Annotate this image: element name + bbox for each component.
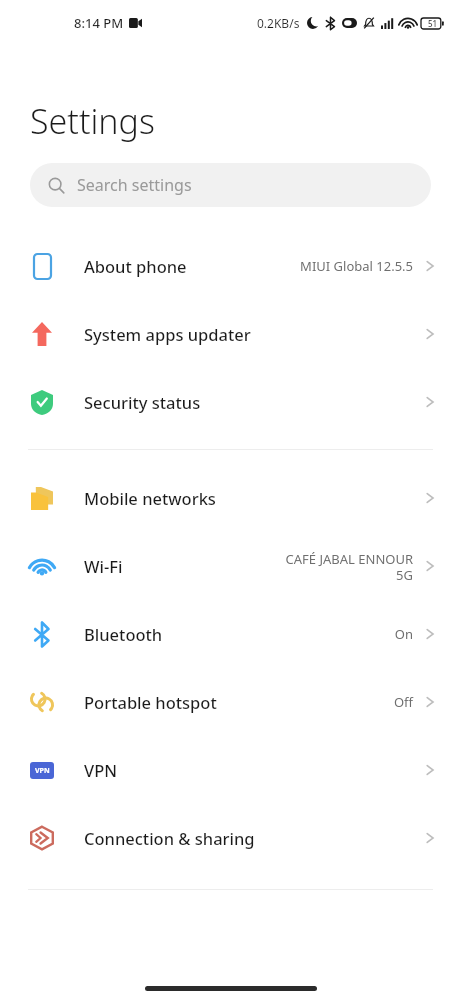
staticText: MIUI Global 12.5.5 [300,257,413,275]
staticText: Bluetooth [84,623,163,645]
button[interactable]: Bluetooth [0,600,461,668]
staticText: System apps updater [84,323,251,345]
staticText: VPN [35,766,50,776]
staticText: Settings [30,98,155,144]
button[interactable]: About phone [0,232,461,300]
button[interactable]: Security status [0,368,461,436]
staticText: 8:14 PM [74,14,124,32]
staticText: 51 [428,18,438,29]
staticText: Off [393,693,413,711]
button[interactable]: Search settings [30,163,431,207]
staticText: Security status [84,391,201,413]
staticText: 0.2KB/s [257,15,300,31]
staticText: CAFÉ JABAL ENNOUR 5G [285,550,413,583]
staticText: Mobile networks [84,487,216,509]
staticText: About phone [84,255,187,277]
button[interactable]: Wi-Fi [0,532,461,600]
button[interactable]: Connection & sharing [0,804,461,872]
staticText: VPN [84,759,118,781]
staticText: Search settings [77,174,192,196]
button[interactable]: Mobile networks [0,464,461,532]
staticText: Wi-Fi [84,555,123,577]
staticText: Portable hotspot [84,691,217,713]
button[interactable]: VPN [0,736,461,804]
staticText: Connection & sharing [84,827,255,849]
button[interactable]: System apps updater [0,300,461,368]
button[interactable]: Portable hotspot [0,668,461,736]
staticText: On [394,625,413,643]
